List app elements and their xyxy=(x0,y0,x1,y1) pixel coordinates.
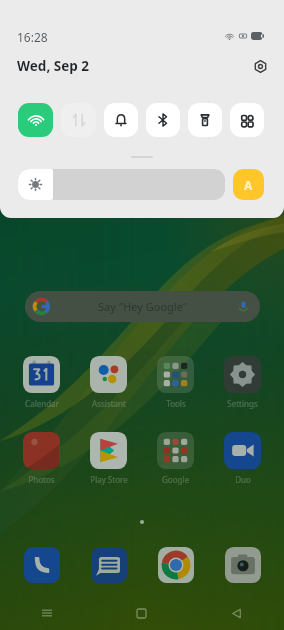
staticText: Tools xyxy=(166,398,186,409)
button[interactable]: Recents xyxy=(0,602,94,624)
button[interactable]: Messages xyxy=(80,547,137,583)
staticText: Photos xyxy=(28,474,55,485)
button[interactable]: Photos xyxy=(13,432,70,485)
button[interactable]: More xyxy=(230,103,264,137)
button[interactable]: Assistant xyxy=(80,356,137,409)
button[interactable]: Calendar xyxy=(13,356,70,409)
button[interactable]: Home xyxy=(94,602,189,624)
button[interactable]: Phone xyxy=(13,547,70,583)
staticText: Calendar xyxy=(25,398,59,409)
button[interactable]: Wi-Fi xyxy=(18,103,53,137)
button[interactable]: Google xyxy=(147,432,204,485)
button[interactable]: Brightness xyxy=(18,169,225,200)
button[interactable]: Chrome xyxy=(147,547,204,583)
staticText: Google xyxy=(162,474,189,485)
staticText: Wed, Sep 2 xyxy=(17,57,89,75)
button[interactable]: A xyxy=(233,169,264,200)
staticText: Play Store xyxy=(90,474,128,485)
staticText: 16:28 xyxy=(17,29,48,43)
button[interactable]: Sound xyxy=(104,103,138,137)
button[interactable]: Back xyxy=(189,602,284,624)
button[interactable]: Tools xyxy=(147,356,204,409)
button[interactable]: Duo xyxy=(214,432,271,485)
staticText: Duo xyxy=(235,474,251,485)
button[interactable]: Say "Hey Google" xyxy=(25,291,260,322)
button[interactable]: Mobile data xyxy=(61,103,96,137)
button[interactable]: Play Store xyxy=(80,432,137,485)
staticText: A xyxy=(244,177,253,193)
staticText: Assistant xyxy=(92,398,126,409)
button[interactable]: Flashlight xyxy=(188,103,222,137)
button[interactable]: Bluetooth xyxy=(146,103,180,137)
staticText: Settings xyxy=(227,398,258,409)
staticText: Say "Hey Google" xyxy=(98,299,188,314)
button[interactable]: Settings xyxy=(251,57,269,75)
button[interactable]: Settings xyxy=(214,356,271,409)
button[interactable]: Camera xyxy=(214,547,271,583)
